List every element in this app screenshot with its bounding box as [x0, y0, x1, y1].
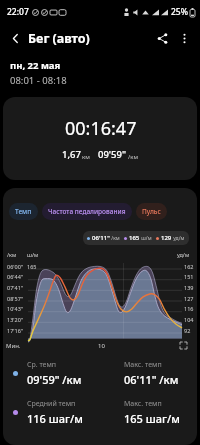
staticText: ш/м: [140, 235, 152, 242]
staticText: 10'43": [7, 305, 24, 312]
button[interactable]: Темп: [9, 203, 38, 220]
button[interactable]: Share: [151, 27, 173, 49]
button[interactable]: Средний темп: [3, 399, 100, 426]
staticText: Средний темп: [27, 399, 76, 409]
staticText: Частота педалирования: [48, 207, 126, 216]
staticText: 129: [161, 234, 172, 242]
staticText: 25%: [171, 6, 188, 18]
staticText: 151: [184, 273, 194, 280]
button[interactable]: 00:16:47: [3, 97, 197, 180]
staticText: 17'16": [7, 327, 24, 334]
staticText: Мин.: [6, 342, 21, 350]
staticText: км: [82, 153, 90, 161]
staticText: 06'44": [7, 273, 24, 280]
staticText: Макс. темп: [124, 360, 162, 370]
staticText: ш/м: [27, 251, 39, 258]
staticText: 06'11" /км: [124, 372, 179, 387]
staticText: 116: [184, 305, 194, 312]
staticText: 165 шаг/м: [124, 411, 180, 426]
button[interactable]: More options: [174, 28, 194, 48]
staticText: /км: [110, 235, 120, 242]
staticText: 13'20": [7, 316, 24, 323]
staticText: 00:16:47: [65, 116, 137, 141]
button[interactable]: Expand chart: [177, 339, 189, 351]
staticText: 10: [98, 342, 105, 350]
button[interactable]: Макс. темп: [100, 399, 197, 426]
button[interactable]: Back: [5, 28, 25, 48]
staticText: уд/м: [177, 251, 190, 258]
staticText: 1,67: [62, 148, 81, 161]
staticText: Бег (авто): [28, 30, 90, 47]
staticText: 08'57": [7, 295, 24, 302]
staticText: 139: [184, 284, 194, 291]
staticText: 08:01 - 08:18: [10, 74, 67, 87]
staticText: Макс. темп: [124, 399, 162, 409]
staticText: 07'41": [7, 284, 24, 291]
staticText: Темп: [15, 207, 32, 216]
staticText: 09'59": [98, 148, 127, 161]
staticText: 165: [27, 263, 37, 270]
staticText: пн, 22 мая: [10, 59, 61, 72]
button[interactable]: Ср. темп: [3, 360, 100, 387]
staticText: 162: [184, 263, 194, 270]
staticText: 104: [184, 316, 194, 323]
staticText: 165: [129, 234, 140, 242]
staticText: Пульс: [142, 207, 161, 216]
staticText: 09'59" /км: [27, 372, 82, 387]
staticText: уд/м: [172, 235, 185, 242]
staticText: /км: [7, 251, 17, 258]
staticText: 127: [184, 295, 194, 302]
button[interactable]: Макс. темп: [100, 360, 197, 387]
staticText: Ср. темп: [27, 360, 57, 370]
staticText: 116 шаг/м: [27, 411, 83, 426]
staticText: /км: [128, 153, 139, 161]
button[interactable]: Пульс: [136, 203, 167, 220]
staticText: 06'00": [7, 263, 24, 270]
staticText: 22:07: [7, 6, 29, 18]
staticText: 06'11": [92, 234, 110, 242]
staticText: 92: [184, 327, 191, 334]
button[interactable]: Частота педалирования: [42, 203, 132, 220]
